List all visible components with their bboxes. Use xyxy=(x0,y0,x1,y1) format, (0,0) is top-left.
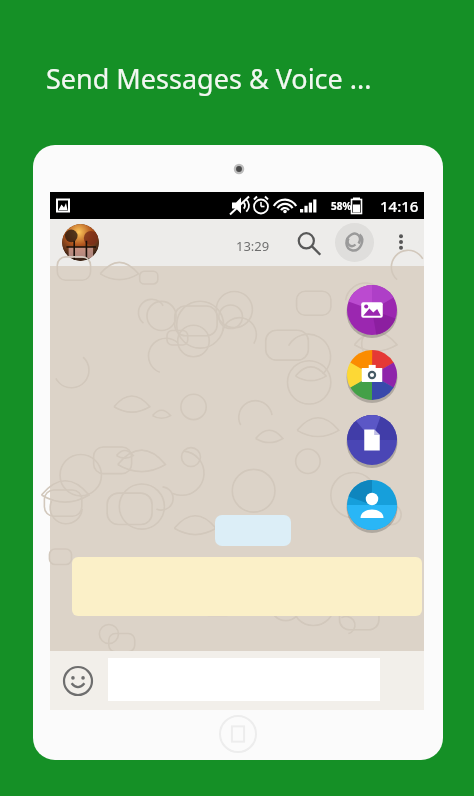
button[interactable]: Gallery xyxy=(344,282,400,338)
button[interactable]: Search xyxy=(294,229,322,257)
button[interactable]: More options xyxy=(388,229,414,255)
button[interactable]: Contact photo xyxy=(62,224,99,261)
button[interactable]: Camera xyxy=(344,347,400,403)
button[interactable]: Home xyxy=(219,715,257,753)
staticText: Send Messages & Voice ... xyxy=(46,60,372,97)
staticText: 13:29 xyxy=(236,237,270,255)
staticText: 14:16 xyxy=(380,196,419,216)
button[interactable]: Document xyxy=(344,412,400,468)
staticText: 58% xyxy=(331,199,352,213)
button[interactable]: Contact xyxy=(344,477,400,533)
button[interactable]: Attach xyxy=(335,223,374,262)
button[interactable]: Emoji xyxy=(62,665,94,697)
button[interactable] xyxy=(215,515,291,546)
